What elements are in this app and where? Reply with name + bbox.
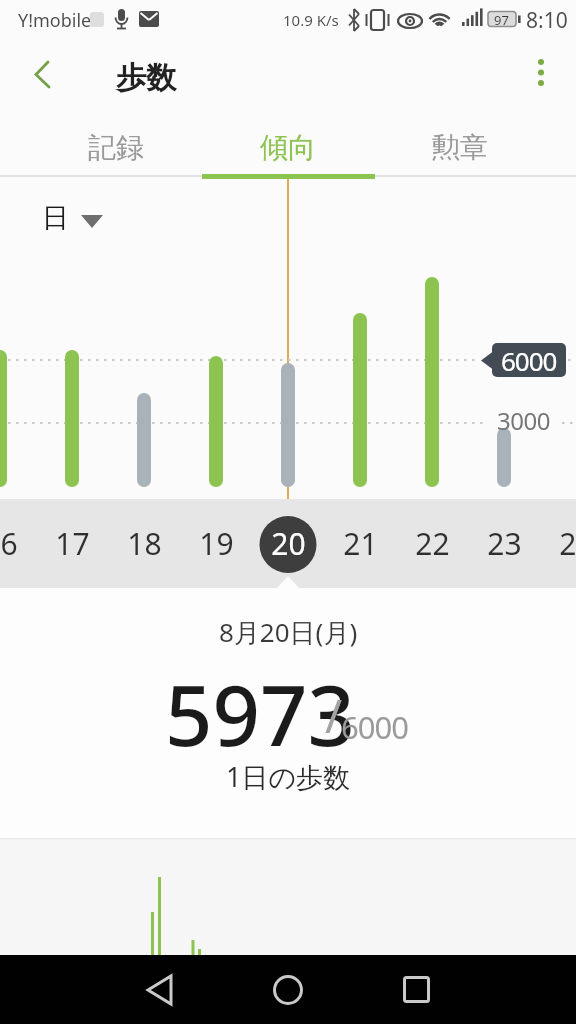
staticText: 8月20日(月): [219, 614, 358, 650]
staticText: 勲章: [432, 130, 488, 165]
staticText: 20: [271, 523, 306, 564]
button[interactable]: 20: [252, 499, 324, 588]
staticText: 8:10: [526, 6, 568, 35]
button[interactable]: 勲章: [374, 119, 546, 175]
button[interactable]: [96, 955, 224, 1024]
button[interactable]: [20, 45, 64, 100]
staticText: 23: [487, 523, 522, 564]
staticText: /: [325, 684, 343, 747]
staticText: 3000: [497, 404, 550, 437]
button[interactable]: 17: [36, 499, 108, 588]
staticText: 17: [55, 523, 90, 564]
button[interactable]: [224, 955, 352, 1024]
staticText: 16: [0, 523, 18, 564]
button[interactable]: [352, 955, 480, 1024]
staticText: Y!mobile: [18, 8, 92, 33]
button[interactable]: 傾向: [202, 119, 374, 175]
button[interactable]: 19: [180, 499, 252, 588]
staticText: 5973: [165, 657, 355, 770]
staticText: 日: [42, 201, 69, 235]
staticText: 1日の歩数: [226, 758, 351, 795]
button[interactable]: 16: [0, 499, 36, 588]
staticText: 18: [127, 523, 162, 564]
staticText: 21: [343, 523, 378, 564]
staticText: 24: [559, 523, 576, 564]
button[interactable]: 24: [540, 499, 576, 588]
button[interactable]: 23: [468, 499, 540, 588]
button[interactable]: 18: [108, 499, 180, 588]
button[interactable]: 21: [324, 499, 396, 588]
staticText: 傾向: [260, 130, 316, 165]
button[interactable]: 22: [396, 499, 468, 588]
staticText: 6000: [501, 343, 557, 377]
staticText: 10.9 K/s: [283, 10, 339, 30]
staticText: 歩数: [116, 59, 176, 97]
button[interactable]: 記録: [30, 119, 202, 175]
staticText: 97: [494, 11, 509, 29]
staticText: 22: [415, 523, 450, 564]
button[interactable]: [517, 45, 565, 100]
staticText: 6000: [341, 706, 408, 748]
staticText: 19: [199, 523, 234, 564]
staticText: 記録: [88, 130, 144, 165]
